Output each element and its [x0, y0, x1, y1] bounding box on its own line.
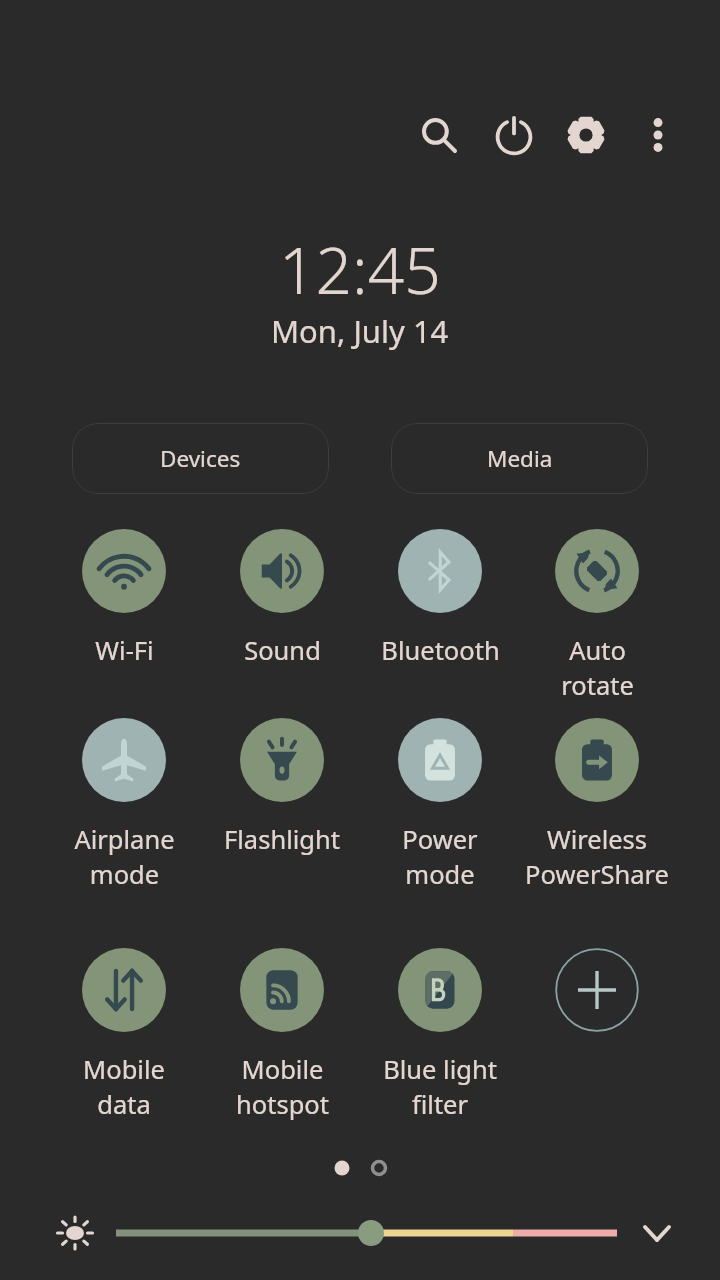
button[interactable]: Devices	[72, 423, 329, 494]
staticText: Auto rotate	[561, 633, 634, 703]
staticText: 12:45	[279, 226, 441, 313]
button[interactable]: Settings	[558, 107, 614, 163]
button[interactable]: Brightness slider	[0, 1205, 720, 1261]
button[interactable]: Add tile	[519, 948, 675, 1032]
staticText: Wi-Fi	[95, 633, 154, 668]
staticText: Devices	[160, 443, 241, 474]
staticText: Airplane mode	[74, 822, 175, 892]
button[interactable]: Wireless PowerShare	[519, 718, 675, 892]
staticText: Flashlight	[224, 822, 340, 857]
button[interactable]: Bluetooth	[361, 529, 519, 668]
button[interactable]: Media	[391, 423, 648, 494]
button[interactable]: Flashlight	[203, 718, 361, 857]
button[interactable]: Mobile hotspot	[203, 948, 361, 1122]
button[interactable]: Sound	[203, 529, 361, 668]
button[interactable]: More options	[630, 107, 686, 163]
other: Add tile	[555, 948, 639, 1032]
staticText: Power mode	[402, 822, 478, 892]
button[interactable]: Wi-Fi	[45, 529, 203, 668]
staticText: Wireless PowerShare	[525, 822, 669, 892]
staticText: Mon, July 14	[271, 310, 449, 352]
button[interactable]: Blue light filter	[361, 948, 519, 1122]
staticText: Mobile data	[83, 1052, 165, 1122]
staticText: Sound	[244, 633, 321, 668]
button[interactable]: Power mode	[361, 718, 519, 892]
button[interactable]: Airplane mode	[45, 718, 203, 892]
staticText: Mobile hotspot	[236, 1052, 329, 1122]
button[interactable]: Auto rotate	[519, 529, 675, 703]
button[interactable]: Power	[486, 107, 542, 163]
button[interactable]: Search	[411, 107, 467, 163]
staticText: Blue light filter	[383, 1052, 497, 1122]
staticText: Media	[487, 443, 553, 474]
staticText: Bluetooth	[381, 633, 500, 668]
button[interactable]: Mobile data	[45, 948, 203, 1122]
